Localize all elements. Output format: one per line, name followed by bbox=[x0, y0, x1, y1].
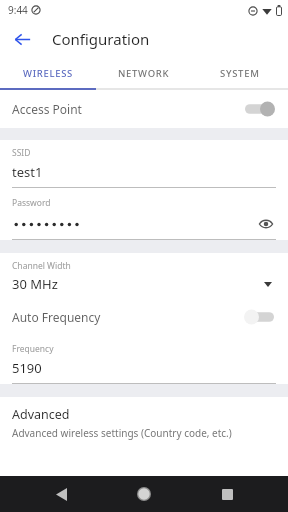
button[interactable]: SYSTEM bbox=[192, 58, 288, 88]
staticText: Password bbox=[12, 197, 51, 209]
button[interactable]: Expand channel width bbox=[260, 276, 276, 292]
staticText: Advanced wireless settings (Country code… bbox=[12, 426, 232, 440]
button[interactable]: Access Point bbox=[0, 90, 288, 128]
staticText: NETWORK bbox=[118, 67, 170, 80]
button[interactable]: Back bbox=[47, 480, 75, 508]
staticText: SYSTEM bbox=[220, 67, 260, 80]
button[interactable]: Password bbox=[0, 188, 288, 240]
button[interactable]: Recent apps bbox=[213, 480, 241, 508]
button[interactable]: NETWORK bbox=[96, 58, 192, 88]
button[interactable]: Advanced bbox=[0, 397, 288, 449]
staticText: 9:44 bbox=[8, 3, 28, 17]
staticText: SSID bbox=[12, 147, 31, 159]
button[interactable]: Channel Width bbox=[0, 253, 288, 298]
button[interactable]: Home bbox=[130, 480, 158, 508]
staticText: Frequency bbox=[12, 343, 54, 355]
button[interactable]: Auto Frequency bbox=[0, 298, 288, 336]
staticText: Channel Width bbox=[12, 260, 71, 272]
button[interactable]: SSID bbox=[0, 140, 288, 188]
staticText: test1 bbox=[12, 163, 43, 181]
staticText: Advanced bbox=[12, 406, 70, 423]
button[interactable]: Frequency bbox=[0, 336, 288, 384]
staticText: 5190 bbox=[12, 359, 42, 377]
button[interactable]: Show password bbox=[256, 214, 276, 234]
button[interactable]: Back bbox=[6, 23, 38, 55]
staticText: Access Point bbox=[12, 101, 243, 117]
staticText: Auto Frequency bbox=[12, 309, 243, 325]
staticText: WIRELESS bbox=[23, 67, 74, 80]
staticText: 30 MHz bbox=[12, 275, 260, 293]
button[interactable]: WIRELESS bbox=[0, 58, 96, 88]
staticText: Configuration bbox=[52, 29, 150, 49]
